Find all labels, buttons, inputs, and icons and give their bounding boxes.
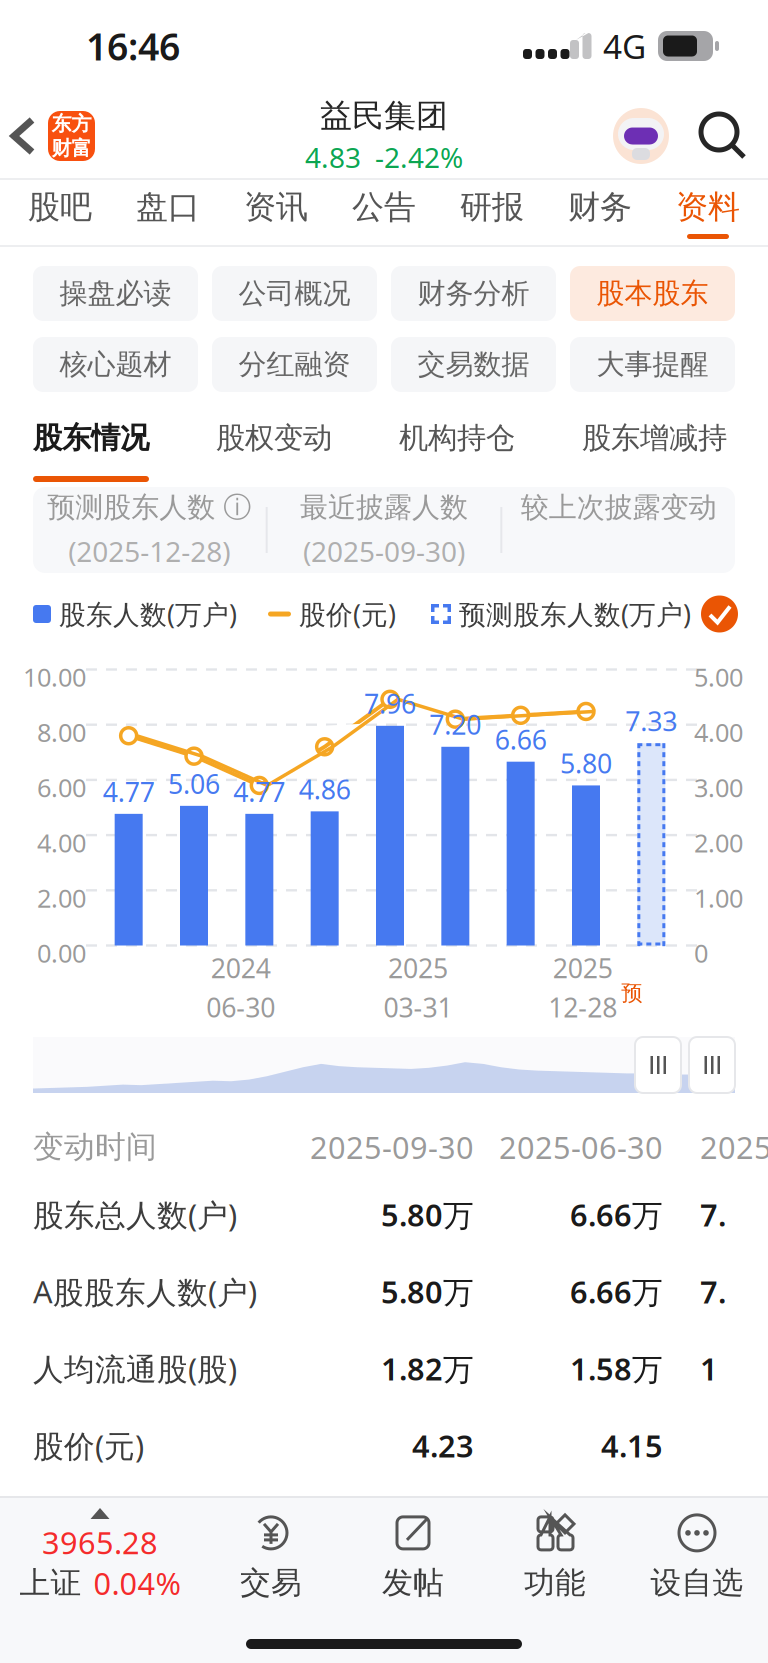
button[interactable]: 研报 (438, 180, 546, 247)
staticText: (2025-09-30) (303, 533, 465, 570)
staticText: 股价(元) (299, 596, 396, 632)
staticText: 4.77 (103, 774, 155, 809)
staticText: 10.00 (23, 660, 86, 694)
button[interactable]: AI assistant (612, 107, 670, 165)
staticText: 0.04% (93, 1563, 180, 1603)
staticText: 6.66万 (570, 1271, 663, 1312)
staticText: 盘口 (136, 187, 200, 227)
staticText: 1 (700, 1348, 718, 1389)
staticText: 6.66万 (570, 1194, 663, 1235)
staticText: 2025 (553, 950, 613, 985)
staticText: 2025-09-30 (310, 1127, 474, 1167)
button[interactable]: Search (670, 97, 768, 175)
staticText: 4.83 -2.42% (305, 139, 463, 176)
button[interactable]: 发帖 (342, 1510, 484, 1602)
button[interactable]: 股东情况 (33, 400, 149, 482)
staticText: 股东情况 (33, 420, 149, 456)
button[interactable]: 资料 (654, 180, 762, 247)
staticText: 2.00 (694, 826, 743, 859)
staticText: 16:46 (86, 21, 180, 71)
staticText: 5.00 (694, 660, 743, 694)
staticText: 公司概况 (238, 276, 350, 311)
staticText: 5.80 (560, 745, 612, 781)
staticText: A股股东人数(户) (33, 1271, 257, 1312)
staticText: 益民集团 (320, 96, 448, 136)
staticText: 股本股东 (596, 276, 708, 311)
button[interactable]: 资讯 (222, 180, 330, 247)
button[interactable]: 机构持仓 (399, 400, 515, 482)
staticText: 功能 (524, 1564, 586, 1602)
staticText: 预测股东人数(万户) (459, 596, 691, 632)
staticText: 股价(元) (33, 1425, 144, 1466)
staticText: 分红融资 (238, 347, 350, 382)
staticText: 2.00 (37, 881, 86, 915)
button[interactable]: 股东增减持 (582, 400, 727, 482)
staticText: 操盘必读 (59, 276, 171, 311)
staticText: 06-30 (206, 989, 275, 1025)
staticText: 4.77 (233, 774, 285, 809)
staticText: (2025-12-28) (68, 533, 230, 570)
button[interactable]: 核心题材 (33, 337, 198, 392)
staticText: 东方 (51, 111, 91, 136)
staticText: 财富 (51, 136, 91, 161)
staticText: 较上次披露变动 (521, 490, 717, 525)
staticText: 0 (694, 936, 708, 970)
staticText: 发帖 (382, 1564, 444, 1602)
staticText: 2025-06-30 (499, 1127, 663, 1167)
staticText: 1.00 (694, 881, 743, 915)
button[interactable]: 盘口 (114, 180, 222, 247)
staticText: 4.15 (601, 1425, 663, 1466)
staticText: 3965.28 (42, 1522, 158, 1563)
staticText: 股东人数(万户) (59, 596, 237, 632)
button[interactable]: 交易数据 (391, 337, 556, 392)
staticText: 4.00 (694, 715, 743, 749)
button[interactable]: 财务分析 (391, 266, 556, 321)
staticText: 人均流通股(股) (33, 1348, 237, 1389)
button[interactable]: 公告 (330, 180, 438, 247)
staticText: 2025- (700, 1127, 768, 1167)
staticText: 1.58万 (570, 1348, 663, 1389)
staticText: 2025 (388, 950, 448, 985)
button[interactable]: 财务 (546, 180, 654, 247)
staticText: 1.82万 (381, 1348, 474, 1389)
staticText: 机构持仓 (399, 420, 515, 456)
staticText: 股东总人数(户) (33, 1194, 237, 1235)
staticText: 财务 (568, 187, 632, 227)
staticText: 股权变动 (216, 420, 332, 456)
staticText: 7.20 (429, 707, 481, 742)
staticText: 7. (700, 1194, 726, 1235)
staticText: 4.86 (299, 771, 351, 807)
button[interactable]: 股吧 (6, 180, 114, 247)
button[interactable]: 设自选 (626, 1510, 768, 1602)
staticText: 预 (621, 980, 642, 1006)
button[interactable]: 股本股东 (570, 266, 735, 321)
button[interactable]: 操盘必读 (33, 266, 198, 321)
staticText: 5.80万 (381, 1194, 474, 1235)
staticText: 股吧 (28, 187, 92, 227)
staticText: 4G (603, 24, 646, 68)
button[interactable]: Range handle (689, 1037, 735, 1093)
button[interactable]: 大事提醒 (570, 337, 735, 392)
staticText: 3.00 (694, 771, 743, 804)
staticText: 大事提醒 (596, 347, 708, 382)
staticText: 股东增减持 (582, 420, 727, 456)
staticText: 财务分析 (417, 276, 529, 311)
staticText: 设自选 (650, 1564, 743, 1602)
staticText: 研报 (460, 187, 524, 227)
button[interactable]: 公司概况 (212, 266, 377, 321)
staticText: 12-28 (548, 989, 617, 1025)
button[interactable]: Range handle (635, 1037, 681, 1093)
staticText: 上证 (19, 1564, 81, 1602)
staticText: 7.96 (364, 686, 416, 721)
staticText: 交易 (240, 1564, 302, 1602)
button[interactable]: Back (0, 96, 48, 176)
button[interactable]: 股权变动 (216, 400, 332, 482)
button[interactable]: 分红融资 (212, 337, 377, 392)
staticText: 5.06 (168, 766, 220, 801)
staticText: 0.00 (37, 936, 86, 970)
staticText: 最近披露人数 (300, 490, 468, 525)
button[interactable]: 功能 (484, 1510, 626, 1602)
staticText: 资讯 (244, 187, 308, 227)
button[interactable]: 交易 (200, 1510, 342, 1602)
button[interactable]: 3965.28 (0, 1508, 200, 1603)
